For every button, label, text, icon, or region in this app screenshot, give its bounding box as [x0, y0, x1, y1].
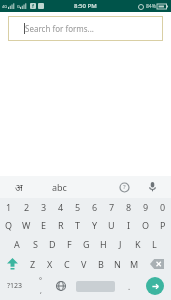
staticText: .: [128, 281, 131, 292]
button[interactable]: V: [75, 253, 92, 274]
staticText: E: [41, 219, 47, 231]
button[interactable]: H: [95, 234, 112, 253]
button[interactable]: abc: [38, 176, 80, 198]
staticText: 4G: [2, 4, 8, 9]
button[interactable]: Z: [24, 253, 41, 274]
staticText: U: [108, 219, 115, 231]
staticText: f: [32, 3, 34, 9]
button[interactable]: Help: [113, 176, 135, 198]
staticText: Y: [92, 219, 98, 231]
button[interactable]: B: [92, 253, 109, 274]
button[interactable]: G: [78, 234, 95, 253]
staticText: N: [114, 258, 121, 270]
button[interactable]: D: [44, 234, 61, 253]
button[interactable]: 8: [120, 198, 137, 215]
staticText: G: [83, 238, 90, 250]
button[interactable]: 6: [86, 198, 103, 215]
staticText: 5: [75, 201, 81, 213]
staticText: G: [17, 4, 20, 9]
button[interactable]: A: [8, 234, 26, 253]
button[interactable]: Enter: [139, 274, 171, 298]
staticText: O: [142, 219, 150, 231]
button[interactable]: °: [30, 274, 50, 298]
button[interactable]: 4: [52, 198, 69, 215]
button[interactable]: .: [119, 274, 139, 298]
staticText: 7: [109, 201, 115, 213]
staticText: 3: [41, 201, 47, 213]
staticText: T: [75, 219, 81, 231]
button[interactable]: N: [109, 253, 126, 274]
staticText: 4: [58, 201, 64, 213]
button[interactable]: Change language: [50, 274, 72, 298]
staticText: 8: [126, 201, 132, 213]
staticText: P: [160, 219, 166, 231]
button[interactable]: Backspace: [143, 253, 171, 274]
staticText: J: [119, 238, 122, 250]
button[interactable]: O: [137, 215, 154, 234]
staticText: S: [33, 238, 38, 250]
button[interactable]: R: [52, 215, 69, 234]
staticText: 8:50 PM: [74, 2, 97, 10]
staticText: 9: [143, 201, 149, 213]
staticText: abc: [52, 181, 67, 193]
staticText: Search for forms...: [25, 23, 95, 34]
button[interactable]: W: [18, 215, 35, 234]
button[interactable]: J: [112, 234, 129, 253]
staticText: F: [67, 238, 72, 250]
staticText: 6: [92, 201, 98, 213]
button[interactable]: अ: [0, 176, 38, 198]
staticText: H: [100, 238, 107, 250]
staticText: ,: [40, 286, 42, 296]
staticText: अ: [15, 180, 23, 194]
staticText: B: [98, 258, 104, 270]
staticText: 1: [6, 201, 12, 213]
staticText: 2: [24, 201, 30, 213]
button[interactable]: 0: [154, 198, 171, 215]
staticText: L: [152, 238, 157, 250]
button[interactable]: Y: [86, 215, 103, 234]
button[interactable]: 7: [103, 198, 120, 215]
button[interactable]: P: [154, 215, 171, 234]
staticText: ?123: [7, 281, 23, 291]
button[interactable]: K: [129, 234, 146, 253]
staticText: D: [49, 238, 56, 250]
button[interactable]: Search for forms...: [8, 16, 163, 41]
button[interactable]: X: [41, 253, 58, 274]
staticText: R: [58, 219, 64, 231]
staticText: Q: [5, 219, 13, 231]
button[interactable]: U: [103, 215, 120, 234]
staticText: A: [14, 238, 20, 250]
staticText: K: [135, 238, 141, 250]
staticText: M: [130, 258, 139, 270]
staticText: Z: [30, 258, 36, 270]
button[interactable]: 5: [69, 198, 86, 215]
staticText: ?: [123, 183, 126, 191]
staticText: 84%: [146, 3, 156, 10]
button[interactable]: F: [61, 234, 78, 253]
button[interactable]: S: [26, 234, 44, 253]
button[interactable]: C: [58, 253, 75, 274]
staticText: I: [127, 219, 131, 231]
staticText: X: [47, 258, 53, 270]
staticText: 0: [160, 201, 166, 213]
button[interactable]: Q: [0, 215, 18, 234]
button[interactable]: Voice input: [141, 176, 163, 198]
button[interactable]: L: [146, 234, 163, 253]
button[interactable]: Shift: [0, 253, 24, 274]
button[interactable]: E: [35, 215, 52, 234]
button[interactable]: 1: [0, 198, 18, 215]
button[interactable]: M: [126, 253, 143, 274]
staticText: V: [81, 258, 87, 270]
button[interactable]: 2: [18, 198, 35, 215]
staticText: °: [39, 276, 42, 286]
button[interactable]: ?123: [0, 274, 30, 298]
button[interactable]: 9: [137, 198, 154, 215]
button[interactable]: T: [69, 215, 86, 234]
button[interactable]: 3: [35, 198, 52, 215]
staticText: C: [64, 258, 70, 270]
button[interactable]: I: [120, 215, 137, 234]
staticText: W: [22, 219, 31, 231]
